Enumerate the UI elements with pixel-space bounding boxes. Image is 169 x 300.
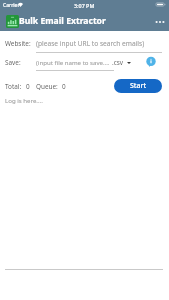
staticText: (input file name to save.... (36, 58, 110, 66)
button[interactable]: .csv (112, 58, 131, 67)
staticText: 0 (26, 82, 30, 91)
staticText: Carrier (3, 2, 20, 9)
button[interactable]: (please input URL to search emails) (36, 37, 162, 49)
button[interactable]: More options (151, 13, 168, 30)
staticText: Queue: (36, 82, 58, 91)
staticText: 3:07 PM (74, 2, 95, 9)
staticText: Save: (5, 58, 21, 67)
button[interactable]: Start (114, 79, 162, 93)
button[interactable]: (input file name to save.... (36, 56, 110, 68)
staticText: Log is here.... (5, 96, 43, 104)
staticText: 0 (62, 82, 66, 91)
staticText: (please input URL to search emails) (36, 39, 145, 48)
staticText: Start (130, 81, 147, 91)
staticText: Website: (5, 39, 31, 48)
staticText: .csv (112, 58, 124, 67)
staticText: Bulk Email Extractor (19, 15, 106, 27)
staticText: Total: (5, 82, 22, 91)
button[interactable]: Info (145, 56, 157, 68)
